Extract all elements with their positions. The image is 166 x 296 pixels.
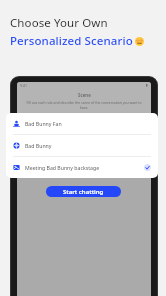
other: Character xyxy=(13,142,20,149)
staticText: ▮ xyxy=(146,83,148,87)
button[interactable]: Start chatting xyxy=(46,186,121,197)
staticText: Start chatting xyxy=(63,188,104,196)
other: Persona xyxy=(13,120,20,127)
staticText: Scene xyxy=(78,92,91,98)
staticText: Bad Bunny xyxy=(25,142,52,149)
button[interactable]: Persona xyxy=(6,113,158,134)
button[interactable]: Scene image xyxy=(6,157,158,178)
staticText: Personalized Scenario xyxy=(10,33,133,49)
staticText: Fill out each rule and describe the scen… xyxy=(23,100,145,110)
staticText: Choose Your Own xyxy=(10,15,108,31)
staticText: Meeting Bad Bunny backstage xyxy=(25,164,100,171)
other: Selected xyxy=(144,164,151,171)
staticText: 9:41 xyxy=(20,83,27,88)
staticText: Bad Bunny Fan xyxy=(25,120,62,127)
other: Scene image xyxy=(13,164,20,171)
button[interactable]: Character xyxy=(6,135,158,156)
